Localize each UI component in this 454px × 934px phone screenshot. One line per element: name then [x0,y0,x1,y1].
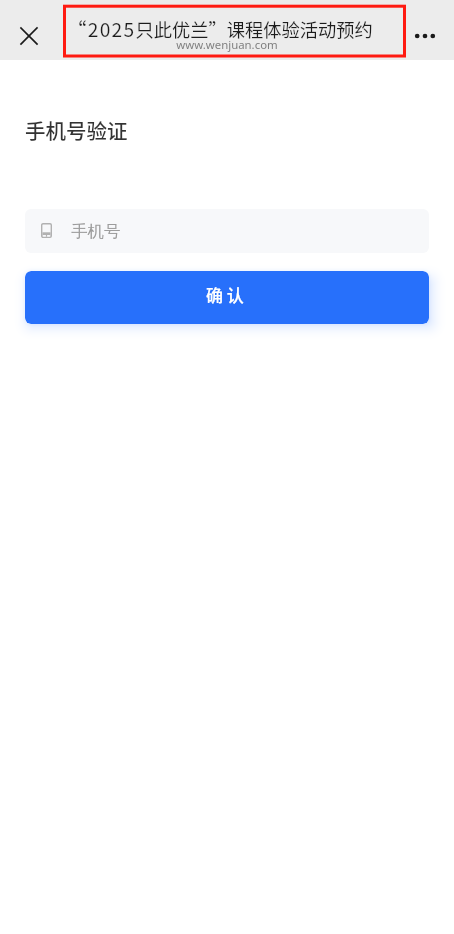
staticText: www.wenjuan.com [176,37,278,53]
staticText: 确 认 [206,282,244,307]
button[interactable]: 确 认 [25,271,429,324]
staticText: 手机号 [71,221,121,242]
staticText: “2025只此优兰”课程体验活动预约 [67,15,373,43]
button[interactable]: Close [11,18,47,54]
staticText: 手机号验证 [25,115,128,145]
button[interactable]: More options [407,18,443,54]
button[interactable]: 手机号 [25,209,429,253]
